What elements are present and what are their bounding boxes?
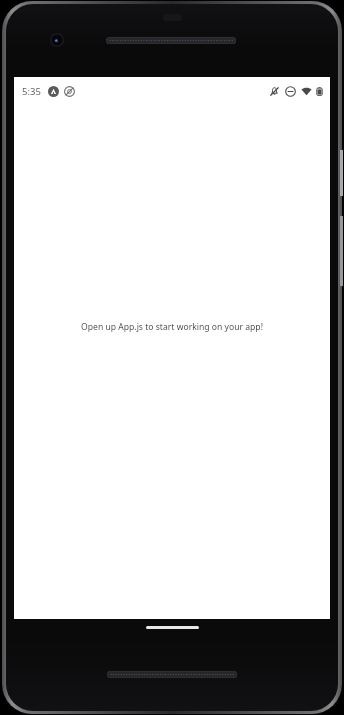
staticText: Open up App.js to start working on your … (81, 321, 263, 333)
other: Expo notification (48, 86, 59, 97)
other: Battery (316, 86, 323, 97)
staticText: 5:35 (22, 85, 41, 98)
other: Do not disturb (285, 86, 296, 97)
other: Notifications off (269, 86, 280, 97)
other: Silent mode (64, 86, 75, 97)
other: Wi-Fi (301, 86, 312, 97)
